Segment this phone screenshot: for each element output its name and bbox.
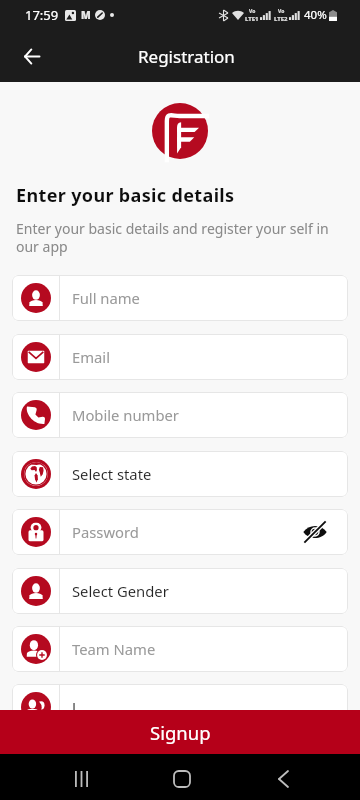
staticText: Select Gender — [72, 581, 169, 601]
button[interactable]: Select state — [12, 451, 348, 497]
staticText: Registration — [138, 45, 235, 68]
button[interactable]: Select Gender — [12, 568, 348, 614]
staticText: Enter your basic details — [16, 183, 235, 208]
button[interactable]: Signup — [0, 710, 360, 754]
staticText: Full name — [72, 288, 140, 308]
button[interactable]: J — [12, 684, 348, 730]
button[interactable]: Home — [162, 759, 202, 799]
button[interactable]: Email — [12, 334, 348, 380]
staticText: Select state — [72, 464, 152, 484]
staticText: Signup — [150, 720, 211, 745]
staticText: M — [81, 8, 91, 22]
staticText: 40% — [304, 7, 327, 23]
button[interactable]: Password — [12, 509, 348, 555]
button[interactable]: Full name — [12, 275, 348, 321]
staticText: 17:59 — [25, 6, 59, 24]
staticText: Mobile number — [72, 405, 179, 425]
button[interactable]: Recent apps — [61, 759, 101, 799]
button[interactable]: Mobile number — [12, 392, 348, 438]
staticText: J — [72, 697, 77, 717]
staticText: Team Name — [72, 639, 156, 659]
button[interactable]: Team Name — [12, 626, 348, 672]
staticText: Vo — [249, 8, 256, 15]
staticText: Enter your basic details and register yo… — [16, 219, 336, 256]
staticText: LTE2 — [274, 15, 288, 23]
staticText: Email — [72, 347, 110, 367]
staticText: LTE1 — [245, 15, 259, 23]
staticText: Password — [72, 522, 139, 542]
staticText: Vo — [278, 8, 285, 15]
button[interactable]: Show password — [295, 512, 335, 552]
button[interactable]: Back — [263, 759, 303, 799]
button[interactable]: Back — [12, 36, 52, 76]
